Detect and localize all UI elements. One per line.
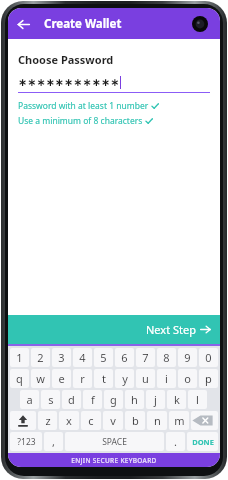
button[interactable]: 9	[178, 348, 197, 367]
button[interactable]: ∗∗∗∗∗∗∗∗∗∗∗	[18, 76, 210, 89]
button[interactable]: u	[136, 369, 155, 388]
staticText: y	[122, 371, 128, 386]
button[interactable]: g	[104, 390, 123, 409]
button[interactable]: ?123	[10, 432, 42, 451]
staticText: 9	[184, 350, 191, 365]
button[interactable]: e	[52, 369, 71, 388]
button[interactable]: q	[10, 369, 29, 388]
button[interactable]: 4	[73, 348, 92, 367]
staticText: q	[16, 371, 23, 386]
button[interactable]: 5	[94, 348, 113, 367]
button[interactable]: 7	[136, 348, 155, 367]
staticText: 8	[163, 350, 170, 365]
button[interactable]: 1	[10, 348, 29, 367]
staticText: j	[154, 392, 157, 407]
button[interactable]: SPACE	[65, 432, 164, 451]
button[interactable]: n	[147, 411, 167, 430]
staticText: p	[205, 371, 212, 386]
staticText: 6	[121, 350, 128, 365]
button[interactable]: 0	[199, 348, 218, 367]
staticText: e	[58, 371, 65, 386]
button[interactable]: o	[178, 369, 197, 388]
staticText: m	[174, 413, 185, 428]
staticText: s	[48, 392, 54, 407]
button[interactable]: b	[125, 411, 145, 430]
staticText: r	[80, 371, 85, 386]
staticText: Choose Password	[18, 52, 114, 67]
staticText: ENJIN SECURE KEYBOARD	[71, 456, 157, 465]
button[interactable]: h	[125, 390, 144, 409]
staticText: 7	[142, 350, 149, 365]
button[interactable]: x	[59, 411, 79, 430]
button[interactable]: l	[188, 390, 207, 409]
staticText: c	[88, 413, 94, 428]
staticText: Use a minimum of 8 characters	[18, 115, 143, 127]
staticText: a	[26, 392, 33, 407]
button[interactable]: Shift	[10, 411, 36, 430]
staticText: k	[174, 392, 180, 407]
staticText: 3	[58, 350, 65, 365]
button[interactable]: a	[20, 390, 39, 409]
staticText: 2	[37, 350, 44, 365]
button[interactable]: c	[81, 411, 101, 430]
staticText: u	[142, 371, 149, 386]
button[interactable]: t	[94, 369, 113, 388]
button[interactable]: Use a minimum of 8 characters	[18, 115, 153, 127]
staticText: x	[66, 413, 72, 428]
staticText: w	[36, 371, 45, 386]
staticText: Next Step	[146, 322, 196, 337]
button[interactable]: i	[157, 369, 176, 388]
button[interactable]: ,	[44, 432, 63, 451]
staticText: ,	[52, 434, 55, 449]
staticText: DONE	[192, 437, 214, 447]
button[interactable]: Next Step	[8, 315, 220, 344]
staticText: d	[68, 392, 75, 407]
button[interactable]: Backspace	[191, 411, 218, 430]
button[interactable]: f	[83, 390, 102, 409]
staticText: n	[154, 413, 161, 428]
staticText: o	[184, 371, 191, 386]
button[interactable]: Password with at least 1 number	[18, 100, 159, 112]
staticText: 4	[79, 350, 86, 365]
button[interactable]: d	[62, 390, 81, 409]
button[interactable]: 2	[31, 348, 50, 367]
staticText: v	[110, 413, 116, 428]
button[interactable]: Back	[11, 12, 35, 36]
button[interactable]: z	[38, 411, 57, 430]
button[interactable]: w	[31, 369, 50, 388]
button[interactable]: y	[115, 369, 134, 388]
staticText: f	[91, 392, 95, 407]
staticText: ?123	[17, 436, 36, 448]
button[interactable]: m	[169, 411, 189, 430]
button[interactable]: s	[41, 390, 60, 409]
staticText: t	[102, 371, 106, 386]
staticText: 1	[16, 350, 23, 365]
staticText: i	[165, 371, 168, 386]
button[interactable]: DONE	[187, 432, 218, 451]
button[interactable]: k	[167, 390, 186, 409]
staticText: z	[45, 413, 51, 428]
button[interactable]: 6	[115, 348, 134, 367]
staticText: 0	[205, 350, 212, 365]
staticText: h	[131, 392, 138, 407]
button[interactable]: j	[146, 390, 165, 409]
button[interactable]: .	[166, 432, 185, 451]
staticText: 5	[100, 350, 107, 365]
button[interactable]: 8	[157, 348, 176, 367]
staticText: l	[196, 392, 199, 407]
button[interactable]: r	[73, 369, 92, 388]
button[interactable]: v	[103, 411, 123, 430]
button[interactable]: 3	[52, 348, 71, 367]
staticText: .	[174, 434, 177, 449]
staticText: ∗∗∗∗∗∗∗∗∗∗∗	[18, 76, 120, 89]
staticText: g	[110, 392, 117, 407]
staticText: Password with at least 1 number	[18, 100, 149, 112]
staticText: Create Wallet	[44, 16, 122, 32]
staticText: SPACE	[102, 436, 127, 448]
button[interactable]: p	[199, 369, 218, 388]
staticText: b	[132, 413, 139, 428]
